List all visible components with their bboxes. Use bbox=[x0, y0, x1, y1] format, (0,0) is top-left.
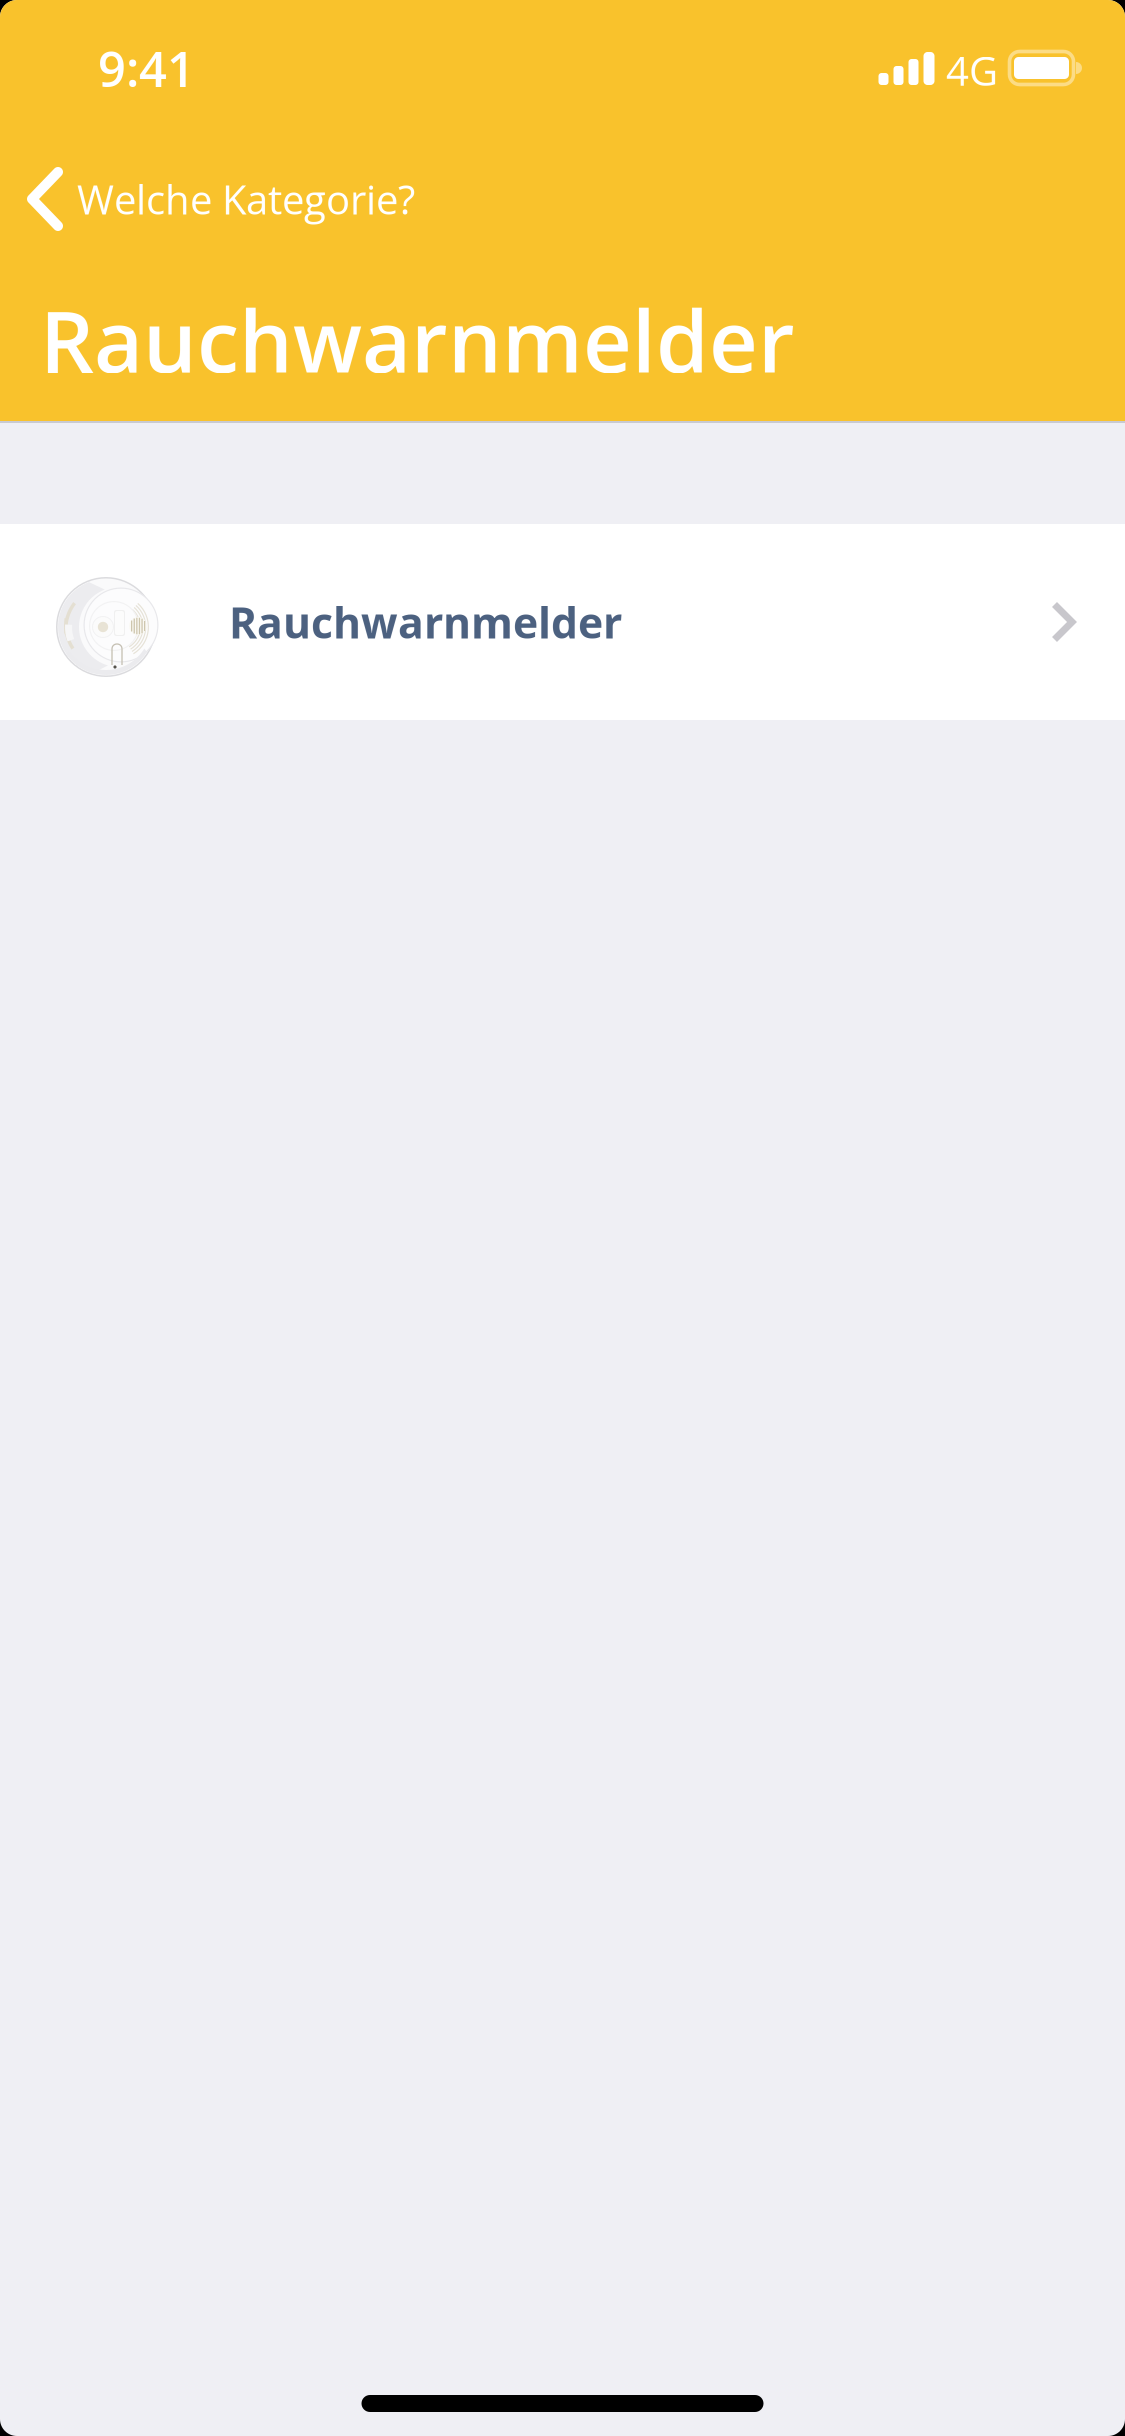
staticText: Rauchwarnmelder bbox=[229, 593, 622, 651]
staticText: Rauchwarnmelder bbox=[40, 282, 795, 397]
staticText: Welche Kategorie? bbox=[77, 172, 415, 226]
button[interactable]: Welche Kategorie? bbox=[0, 153, 1125, 245]
staticText: 4G bbox=[946, 43, 998, 97]
button[interactable]: Rauchwarnmelder bbox=[0, 524, 1125, 720]
staticText: 9:41 bbox=[98, 35, 195, 101]
